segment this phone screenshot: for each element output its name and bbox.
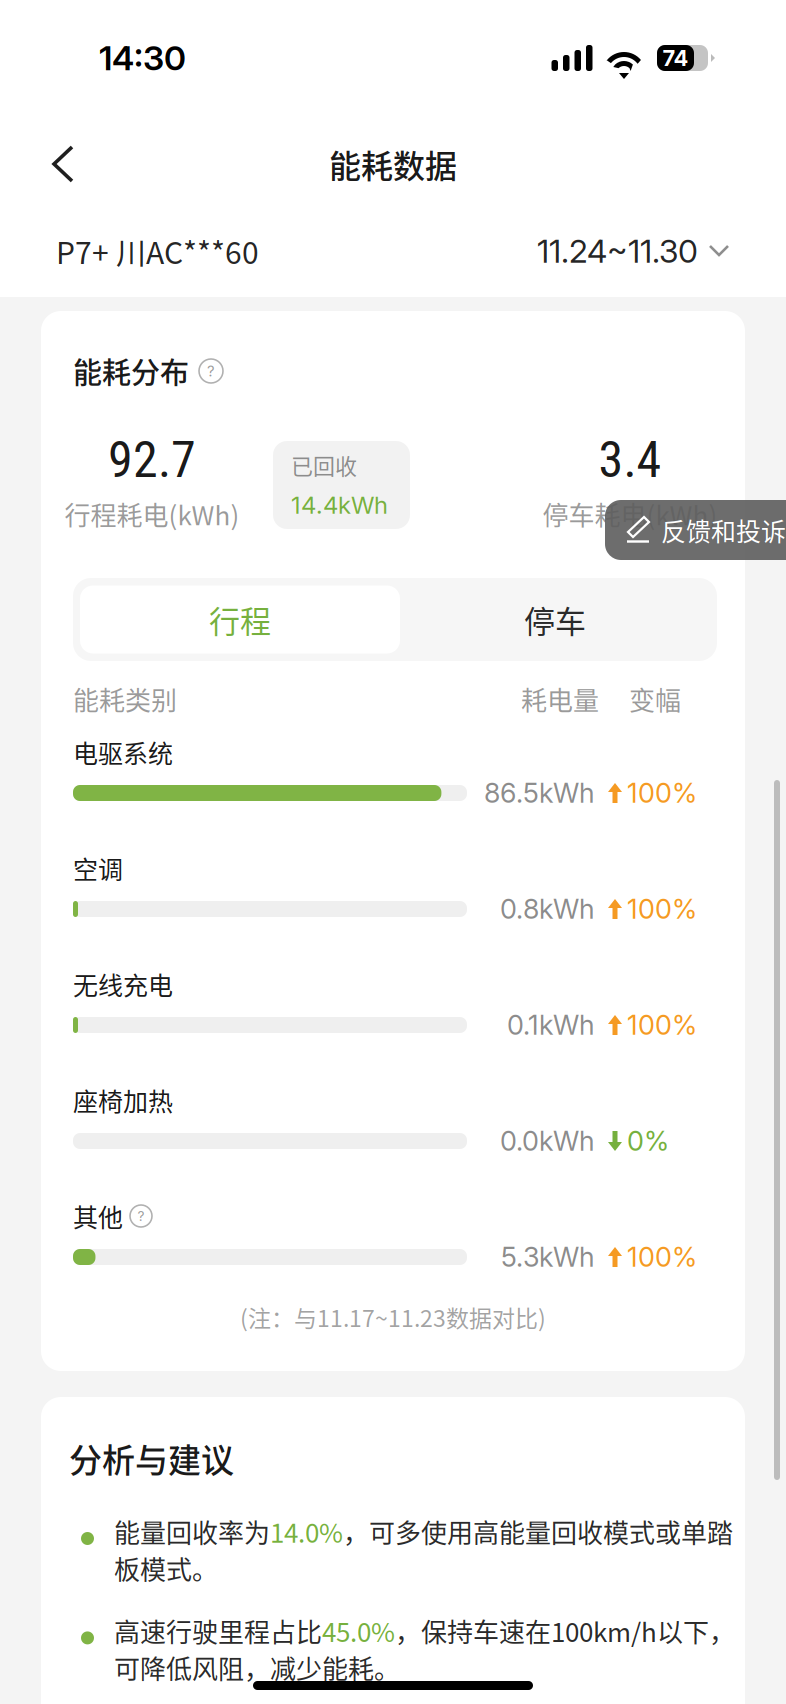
staticText: 变幅 [629, 680, 681, 718]
staticText: 86.5kWh [484, 777, 595, 809]
staticText: (注：与11.17~11.23数据对比) [240, 1300, 546, 1334]
staticText: 能耗类别 [73, 680, 177, 718]
staticText: 行程 [209, 597, 271, 642]
staticText: 能量回收率为14.0%，可多使用高能量回收模式或单踏板模式。 [114, 1513, 733, 1586]
staticText: 74 [662, 45, 688, 71]
staticText: 14.4kWh [291, 490, 388, 519]
staticText: 100% [627, 1241, 697, 1273]
staticText: 反馈和投诉 [661, 512, 786, 548]
staticText: 座椅加热 [73, 1082, 173, 1118]
staticText: 其他 [73, 1198, 123, 1234]
staticText: 已回收 [291, 449, 357, 481]
staticText: 停车耗电(kWh) [542, 495, 717, 533]
staticText: 分析与建议 [69, 1434, 234, 1482]
staticText: 3.4 [598, 431, 661, 489]
staticText: 100% [627, 777, 697, 809]
staticText: 能耗数据 [329, 141, 457, 187]
button[interactable]: 行程 [80, 585, 400, 653]
staticText: ? [207, 362, 215, 380]
staticText: 行程耗电(kWh) [64, 495, 239, 533]
staticText: 高速行驶里程占比45.0%，保持车速在100km/h以下，可降低风阻，减少能耗。 [114, 1612, 735, 1686]
staticText: 100% [627, 893, 697, 925]
staticText: 电驱系统 [73, 734, 173, 770]
staticText: P7+ 川AC***60 [56, 229, 259, 273]
button[interactable]: 11.24~11.30 [537, 232, 730, 270]
staticText: 14:30 [99, 37, 186, 78]
staticText: 5.3kWh [501, 1241, 595, 1273]
staticText: 92.7 [108, 431, 196, 489]
staticText: 0.8kWh [500, 893, 595, 925]
staticText: ? [137, 1208, 144, 1224]
staticText: 空调 [73, 850, 123, 886]
button[interactable]: 停车 [400, 585, 710, 653]
staticText: 能耗分布 [73, 350, 189, 392]
button[interactable]: Back [0, 113, 101, 215]
staticText: 0.0kWh [500, 1125, 595, 1157]
staticText: 0.1kWh [507, 1009, 595, 1041]
staticText: 11.24~11.30 [537, 232, 698, 270]
staticText: 无线充电 [73, 966, 173, 1002]
staticText: 停车 [524, 597, 586, 642]
staticText: 0% [627, 1125, 669, 1157]
button[interactable]: 反馈和投诉 [605, 500, 786, 560]
staticText: 耗电量 [521, 680, 599, 718]
staticText: 100% [627, 1009, 697, 1041]
